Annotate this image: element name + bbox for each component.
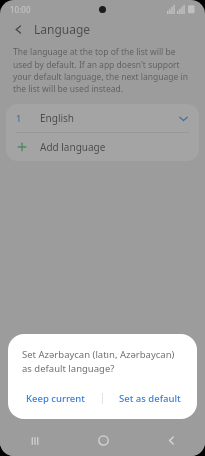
button[interactable]: Set as default [103,381,197,415]
button[interactable]: 1 [6,104,199,132]
button[interactable]: Back [8,19,28,39]
staticText: Set as default [119,392,181,405]
staticText: 1 [16,112,28,124]
button[interactable]: Home [69,425,137,456]
staticText: Add language [40,140,106,154]
button[interactable]: Recent apps [0,425,69,456]
staticText: Keep current [26,392,85,405]
button[interactable]: Back [137,425,205,456]
staticText: Language [34,21,91,37]
staticText: English [40,111,75,125]
staticText: Set Azərbaycan (latın, Azərbaycan) as de… [22,348,183,375]
button[interactable]: Add language [6,133,199,161]
button[interactable]: Keep current [8,381,102,415]
staticText: The language at the top of the list will… [13,46,192,94]
staticText: 10:00 [10,4,31,15]
